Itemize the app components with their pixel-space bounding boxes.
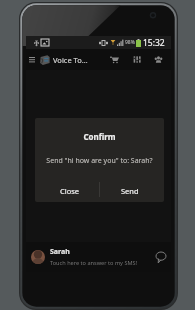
button[interactable]: Open navigation menu: [27, 49, 36, 70]
staticText: 15:32: [143, 37, 165, 49]
button[interactable]: Send: [99, 180, 164, 202]
button[interactable]: Equalizer: [125, 49, 147, 70]
button[interactable]: Contacts: [147, 49, 169, 70]
button[interactable]: Shopping cart: [103, 49, 125, 70]
staticText: Confirm: [35, 131, 164, 142]
staticText: Sarah: [50, 247, 70, 257]
staticText: Voice To…: [53, 55, 88, 65]
staticText: Send: [121, 186, 139, 196]
staticText: Close: [60, 186, 80, 196]
staticText: Touch here to answer to my SMS!: [50, 259, 138, 267]
button[interactable]: Close: [35, 180, 99, 202]
staticText: 98%: [125, 39, 135, 46]
button[interactable]: Sarah: [26, 242, 171, 272]
other: Reply: [156, 252, 166, 263]
staticText: Send "hi how are you" to: Sarah?: [35, 156, 164, 166]
